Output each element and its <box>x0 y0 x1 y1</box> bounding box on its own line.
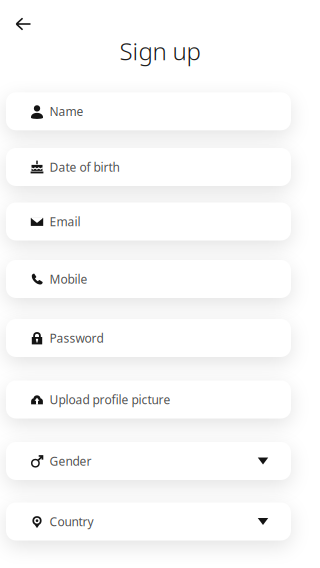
staticText: Email <box>49 213 80 229</box>
staticText: Sign up <box>119 35 200 67</box>
staticText: Upload profile picture <box>49 391 170 407</box>
button[interactable]: Email <box>6 202 291 240</box>
button[interactable]: Gender <box>6 442 291 480</box>
button[interactable]: Password <box>6 319 291 357</box>
staticText: Name <box>49 103 83 119</box>
staticText: Gender <box>49 453 91 469</box>
button[interactable]: Country <box>6 502 291 540</box>
staticText: Password <box>49 330 103 346</box>
button[interactable]: Name <box>6 92 291 130</box>
staticText: Country <box>49 513 93 529</box>
button[interactable]: Date of birth <box>6 148 291 186</box>
staticText: Mobile <box>49 271 87 287</box>
button[interactable]: Mobile <box>6 260 291 298</box>
button[interactable]: Back <box>0 0 45 44</box>
button[interactable]: Upload profile picture <box>6 380 291 418</box>
staticText: Date of birth <box>49 159 119 175</box>
